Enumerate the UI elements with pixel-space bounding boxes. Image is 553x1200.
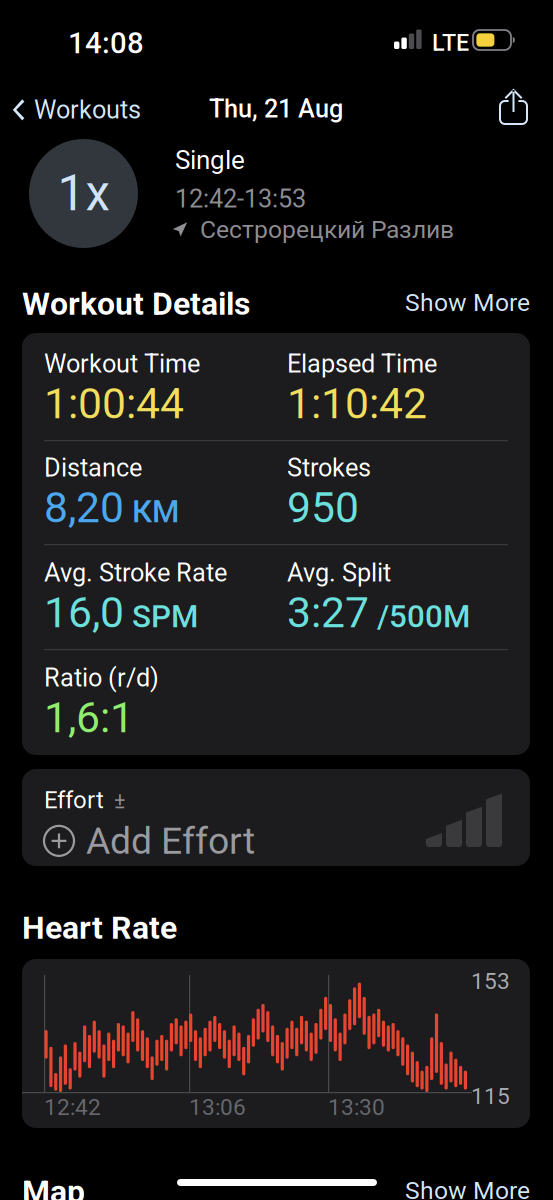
staticText: Elapsed Time <box>287 349 437 379</box>
staticText: 8,20 <box>44 483 124 533</box>
staticText: Map <box>22 1173 85 1200</box>
staticText: 1:00:44 <box>44 379 184 429</box>
staticText: Effort <box>44 786 104 814</box>
staticText: 3:27 <box>287 588 369 638</box>
button[interactable]: Show More <box>0 0 553 1200</box>
staticText: 1x <box>57 165 109 222</box>
staticText: Show More <box>405 288 530 317</box>
staticText: Heart Rate <box>22 909 177 946</box>
staticText: Thu, 21 Aug <box>209 94 343 124</box>
staticText: 950 <box>287 483 359 533</box>
staticText: Ratio (r/d) <box>44 663 159 693</box>
staticText: 14:08 <box>68 26 144 60</box>
staticText: Workouts <box>34 95 141 125</box>
button[interactable]: Share <box>0 0 553 1200</box>
button[interactable]: Effort <box>0 0 553 1200</box>
staticText: 153 <box>471 968 510 995</box>
staticText: 13:06 <box>189 1094 246 1121</box>
staticText: Add Effort <box>86 819 255 863</box>
staticText: /500M <box>377 598 470 635</box>
staticText: 1,6:1 <box>44 693 134 743</box>
staticText: 12:42 <box>44 1094 101 1121</box>
staticText: 1:10:42 <box>287 379 427 429</box>
button[interactable]: Workouts <box>0 0 553 1200</box>
staticText: Strokes <box>287 453 371 483</box>
staticText: Workout Time <box>44 349 200 379</box>
staticText: LTE <box>432 29 469 56</box>
staticText: Single <box>175 145 245 175</box>
staticText: 16,0 <box>44 588 124 638</box>
staticText: Show More <box>405 1176 530 1200</box>
staticText: 115 <box>471 1083 510 1110</box>
staticText: ± <box>114 788 125 813</box>
staticText: 12:42-13:53 <box>175 184 306 214</box>
staticText: Distance <box>44 453 142 483</box>
staticText: Avg. Split <box>287 558 391 588</box>
button[interactable]: Show More <box>0 0 553 1200</box>
staticText: Avg. Stroke Rate <box>44 558 227 588</box>
staticText: Сестрорецкий Разлив <box>200 215 454 244</box>
staticText: КМ <box>132 493 179 530</box>
staticText: SPM <box>132 598 198 635</box>
staticText: Workout Details <box>22 285 250 322</box>
staticText: 13:30 <box>328 1094 385 1121</box>
